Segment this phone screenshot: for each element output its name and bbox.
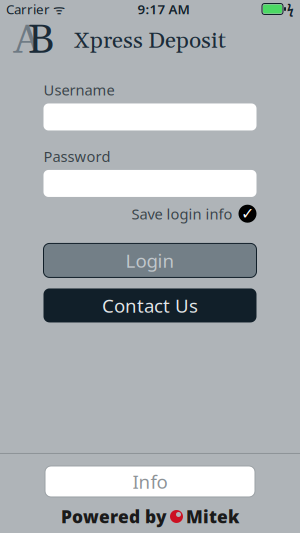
staticText: Xpress Deposit <box>74 27 226 55</box>
button[interactable]: Contact Us <box>43 288 256 322</box>
staticText: Password <box>43 146 110 166</box>
staticText: Contact Us <box>102 293 198 318</box>
staticText: B <box>28 16 54 66</box>
staticText: ϟ <box>287 1 294 17</box>
staticText: Username <box>43 80 114 99</box>
staticText: 9:17 AM <box>137 0 189 18</box>
staticText: Mitek <box>186 505 239 528</box>
staticText: Login <box>125 248 174 273</box>
staticText: Save login info <box>131 204 232 223</box>
staticText: Info <box>132 469 167 494</box>
staticText: Carrier <box>6 0 50 18</box>
staticText: ᯤ <box>50 0 65 18</box>
button[interactable]: Info <box>45 466 255 497</box>
staticText: ✓ <box>241 205 254 223</box>
button[interactable]: Login <box>43 243 256 277</box>
staticText: A <box>13 16 40 66</box>
staticText: Powered by <box>61 505 167 528</box>
button[interactable]: Save login info <box>43 204 256 223</box>
